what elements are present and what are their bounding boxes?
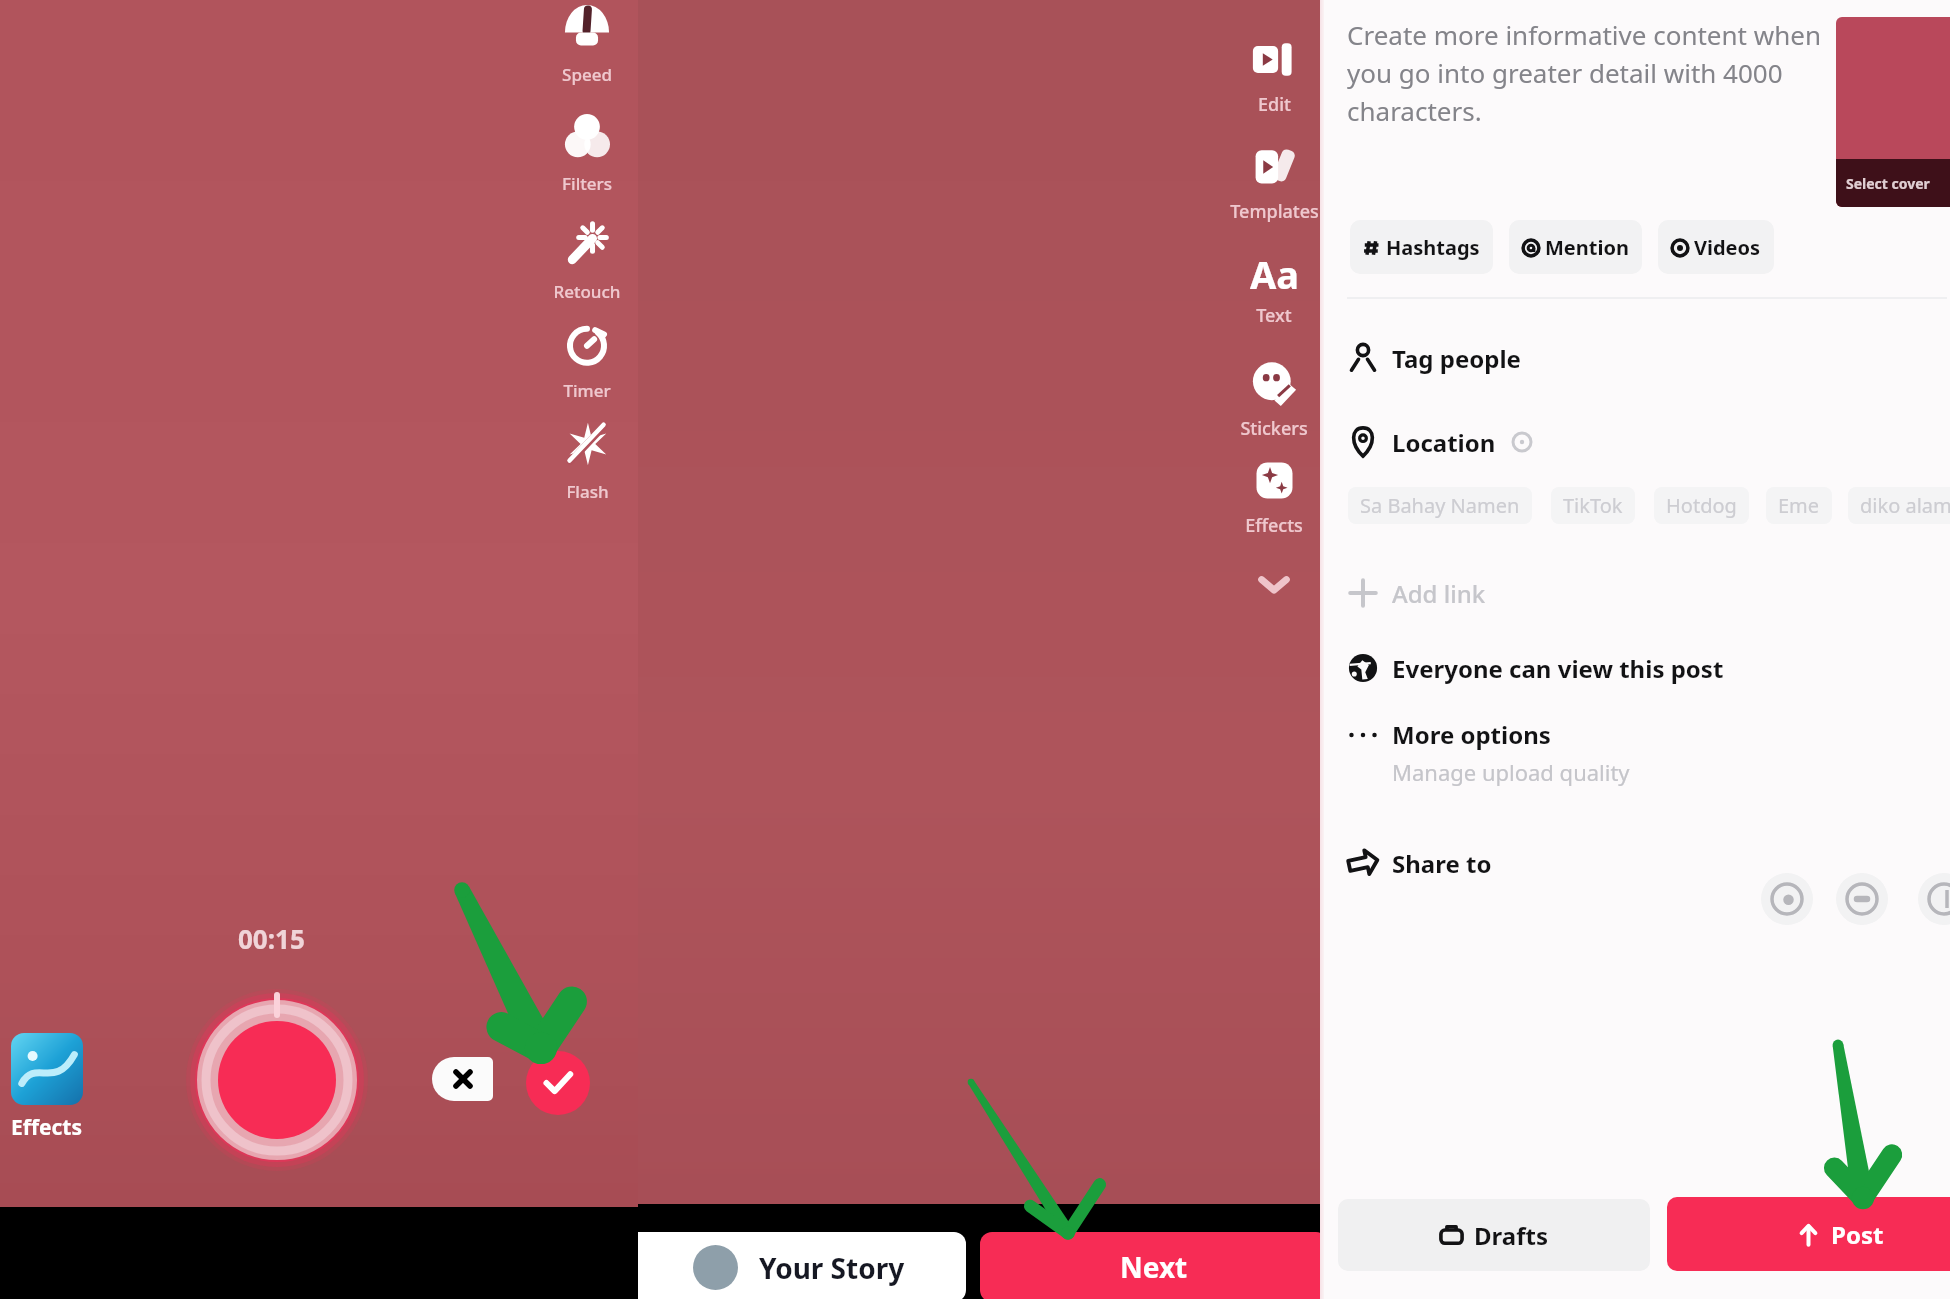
staticText: Speed [562,63,612,86]
staticText: Filters [562,172,612,195]
staticText: Drafts [1474,1219,1548,1252]
staticText: Manage upload quality [1392,757,1630,787]
button[interactable]: Speed [517,4,657,86]
staticText: Hotdog [1666,492,1737,519]
staticText: Edit [1258,92,1291,117]
staticText: Text [1256,303,1292,328]
staticText: Flash [566,480,609,503]
staticText: Your Story [759,1249,905,1287]
staticText: Add link [1392,577,1486,610]
staticText: Effects [1245,513,1303,538]
staticText: Templates [1230,199,1319,224]
staticText: Timer [563,379,611,402]
button[interactable]: Retouch [517,221,657,303]
staticText: Create more informative content when you… [1347,17,1821,128]
button[interactable]: Your Story [638,1232,966,1299]
staticText: Sa Bahay Namen [1360,492,1520,519]
button[interactable]: Timer [517,320,657,402]
staticText: Retouch [553,280,621,303]
button[interactable]: Videos [1658,220,1774,274]
button[interactable]: Share to [1347,839,1577,887]
staticText: Stickers [1240,416,1308,441]
button[interactable]: Post [1667,1197,1950,1271]
staticText: Share to [1392,847,1492,880]
button[interactable]: Select cover [1836,17,1950,207]
button[interactable]: Add link [1347,569,1647,617]
button[interactable]: Share to Facebook [1918,873,1950,925]
button[interactable]: Record [186,989,368,1171]
staticText: Next [1120,1248,1188,1286]
button[interactable]: Effects [11,1033,83,1142]
staticText: TikTok [1563,492,1623,519]
button[interactable]: Confirm [526,1051,590,1115]
button[interactable]: Hashtags [1350,220,1493,274]
button[interactable]: Share to WhatsApp [1761,873,1813,925]
staticText: Everyone can view this post [1392,652,1724,685]
button[interactable]: Hotdog [1654,487,1749,524]
button[interactable]: Edit [1184,37,1364,117]
button[interactable]: Stickers [1184,361,1364,441]
staticText: Hashtags [1386,234,1480,261]
button[interactable]: Mention [1509,220,1642,274]
button[interactable]: Tag people [1347,334,1907,382]
button[interactable]: Effects [1184,458,1364,538]
staticText: diko alam [1860,492,1950,519]
staticText: Effects [11,1113,83,1142]
staticText: Eme [1778,492,1820,519]
button[interactable]: diko alam [1848,487,1950,524]
button[interactable]: Aa [1184,248,1364,328]
button[interactable]: Delete last clip [432,1057,493,1101]
staticText: Videos [1694,234,1761,261]
button[interactable]: Everyone can view this post [1347,644,1907,692]
button[interactable]: Location [1347,418,1907,466]
staticText: Aa [1250,248,1300,293]
button[interactable]: Next [980,1232,1328,1299]
staticText: Location [1392,426,1496,459]
button[interactable]: Flash [517,421,657,503]
staticText: Select cover [1846,174,1930,193]
staticText: Mention [1545,234,1629,261]
button[interactable]: Drafts [1338,1199,1650,1271]
button[interactable]: More options [1347,718,1847,787]
button[interactable]: TikTok [1551,487,1635,524]
staticText: Post [1831,1218,1884,1251]
staticText: More options [1392,718,1551,751]
button[interactable]: Templates [1184,144,1364,224]
button[interactable]: Filters [517,113,657,195]
button[interactable]: Sa Bahay Namen [1348,487,1532,524]
button[interactable]: More tools [1252,562,1296,606]
button[interactable]: Eme [1766,487,1832,524]
staticText: 00:15 [238,921,305,956]
button[interactable]: Share to Messenger [1836,873,1888,925]
staticText: Tag people [1392,342,1521,375]
